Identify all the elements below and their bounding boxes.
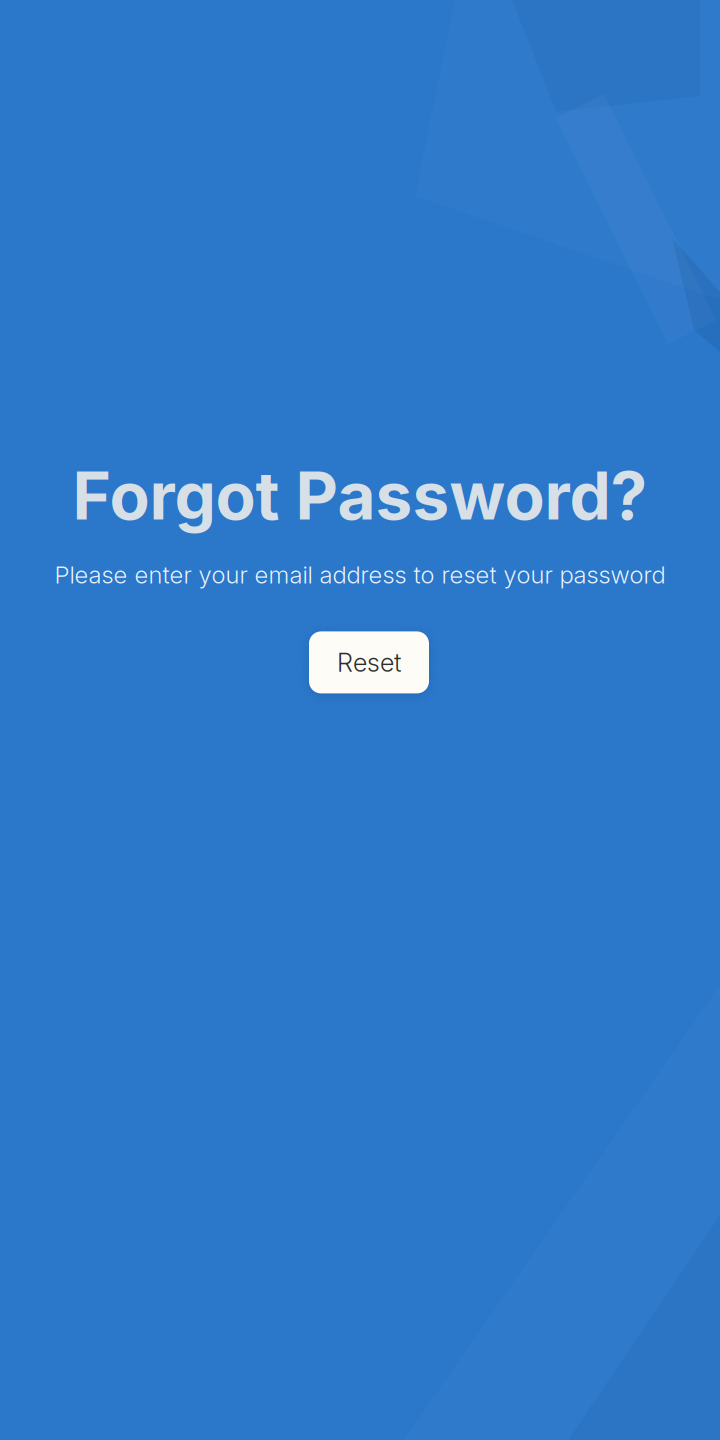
staticText: Please enter your email address to reset… bbox=[54, 560, 665, 589]
button[interactable]: Reset bbox=[309, 631, 429, 693]
staticText: Reset bbox=[337, 647, 401, 678]
staticText: Forgot Password? bbox=[72, 456, 647, 535]
